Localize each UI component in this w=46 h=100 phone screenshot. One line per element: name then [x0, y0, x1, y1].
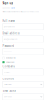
staticText: Sign up — [2, 1, 13, 5]
button[interactable]: Jane Appleseed — [2, 23, 44, 30]
staticText: •••••••• — [4, 51, 12, 53]
staticText: Fill in the details below to finish sett… — [2, 11, 38, 13]
staticText: Email updates — [6, 61, 15, 63]
button[interactable]: United States — [2, 81, 44, 88]
staticText: Country — [2, 77, 13, 80]
button[interactable]: Email updates — [2, 61, 44, 64]
staticText: Jane Appleseed — [4, 26, 15, 28]
staticText: Full name — [2, 19, 15, 23]
staticText: Password — [2, 44, 14, 48]
button[interactable]: GMT +00:00 — [2, 93, 44, 100]
staticText: United States — [4, 84, 12, 85]
button[interactable]: Sign in — [11, 7, 15, 9]
staticText: Sign in — [11, 7, 15, 9]
button[interactable]: jane@example.com — [2, 36, 44, 42]
button[interactable]: Remember me — [2, 57, 44, 59]
button[interactable]: •••••••• — [2, 48, 44, 55]
staticText: GMT +00:00 — [4, 96, 12, 98]
button[interactable]: Acme Inc. — [2, 69, 44, 75]
staticText: Time zone — [2, 89, 16, 93]
staticText: Acme Inc. — [4, 71, 10, 73]
staticText: Company — [2, 65, 14, 68]
staticText: Email address — [2, 32, 19, 35]
staticText: Remember me — [6, 57, 16, 59]
staticText: jane@example.com — [4, 38, 17, 40]
